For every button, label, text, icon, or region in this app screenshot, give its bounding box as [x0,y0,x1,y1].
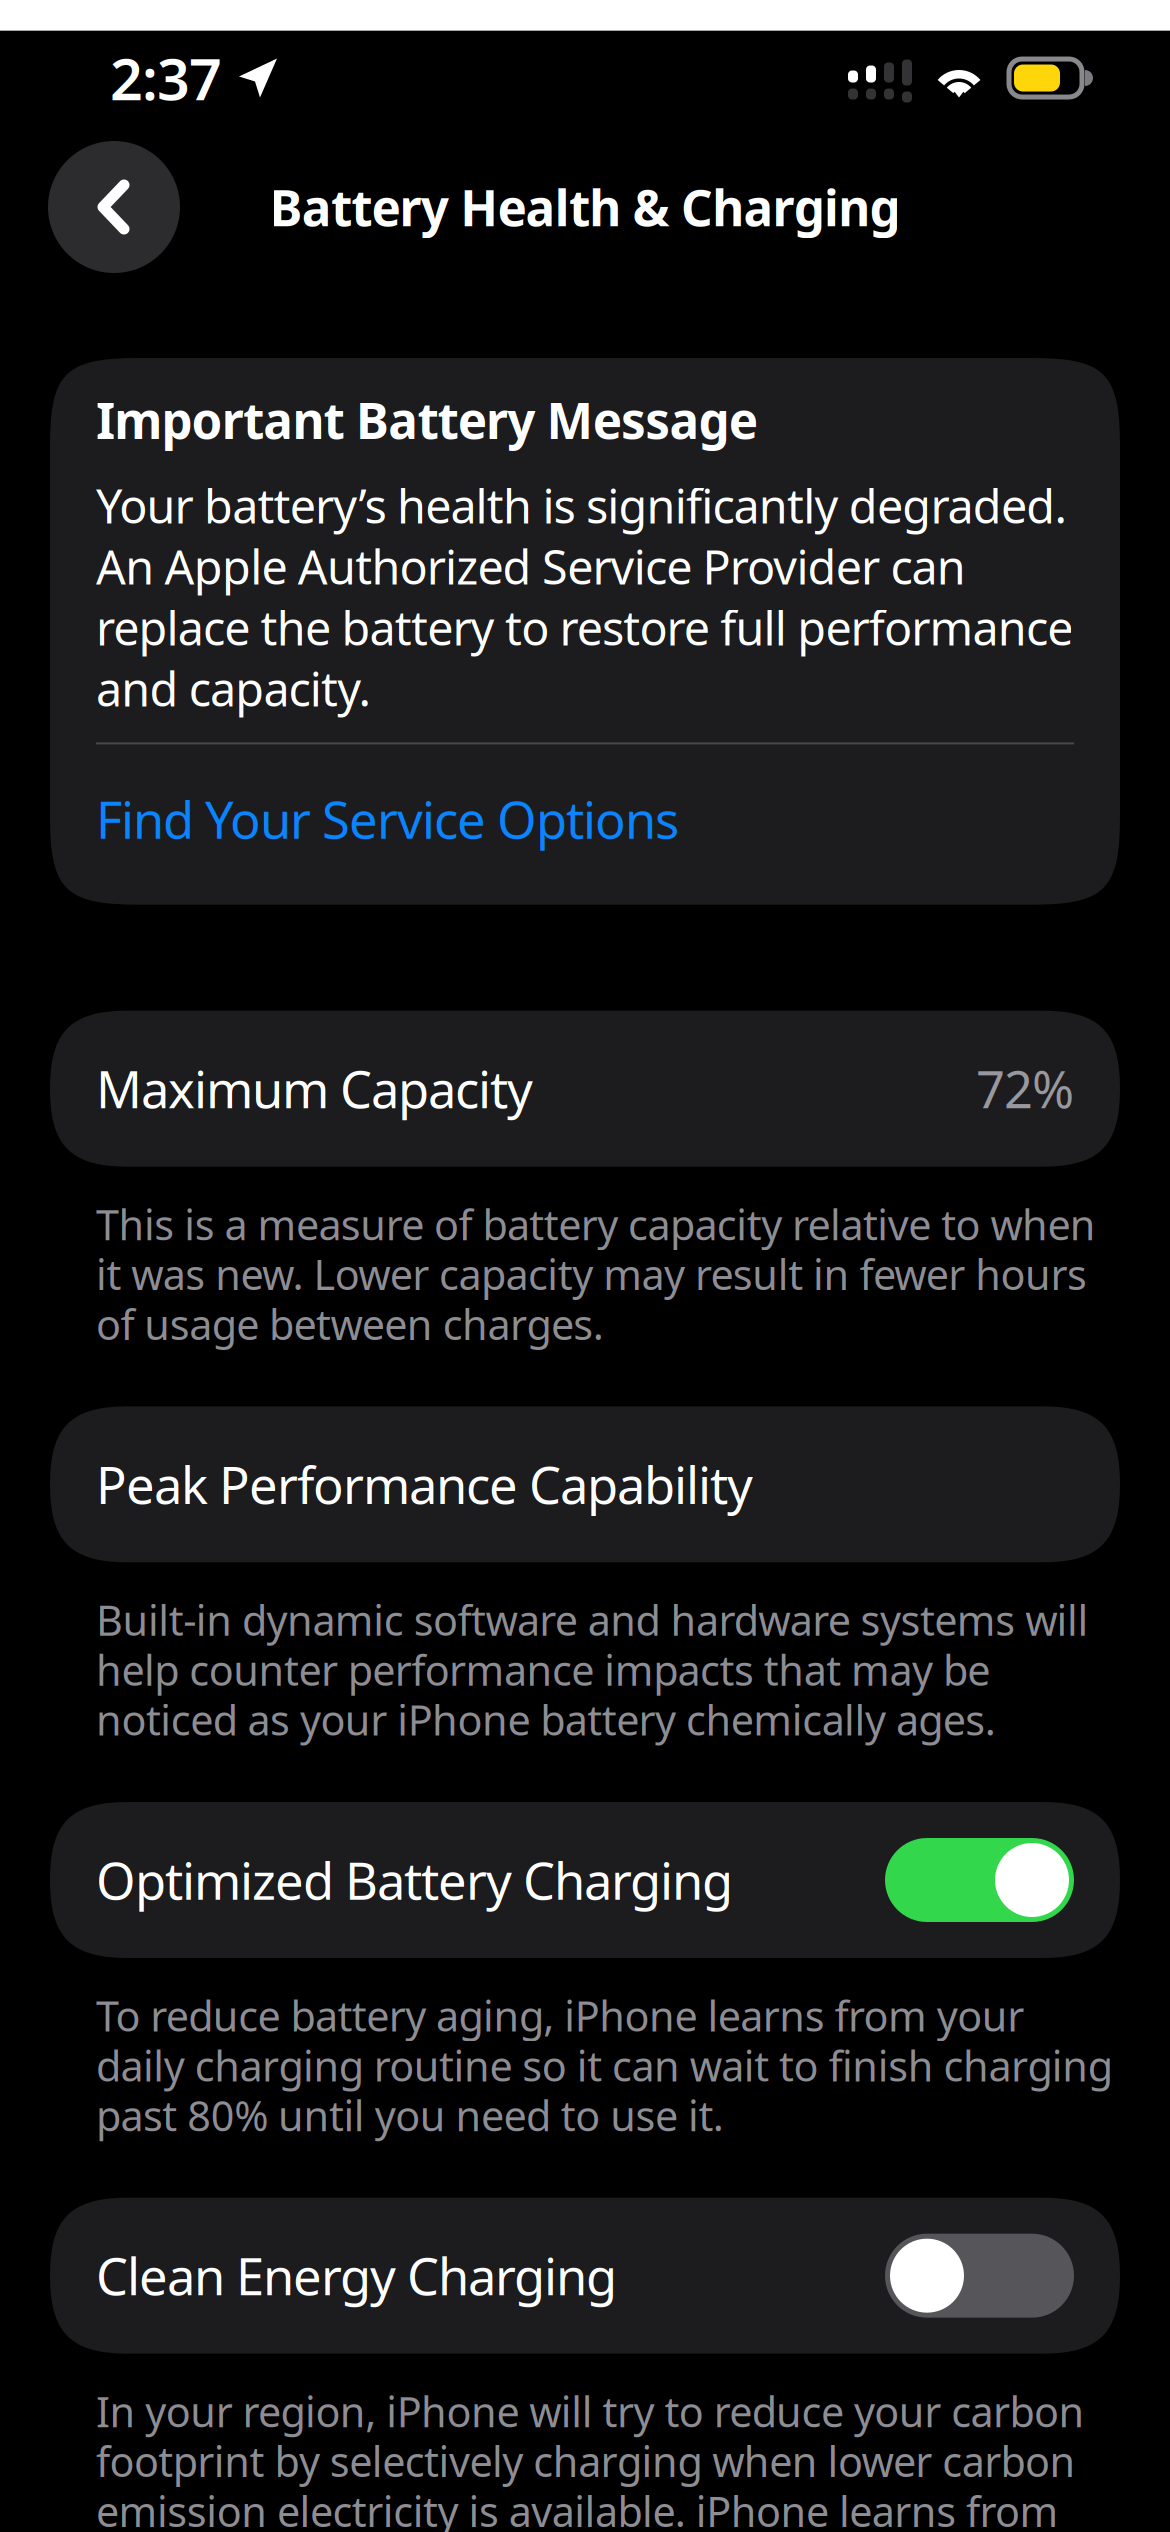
staticText: This is a measure of battery capacity re… [96,1197,1096,1351]
staticText: Built-in dynamic software and hardware s… [96,1592,1088,1747]
staticText: Important Battery Message [96,387,758,452]
staticText: Battery Health & Charging [270,174,900,240]
staticText: Your battery’s health is significantly d… [96,474,1073,719]
button[interactable]: Maximum Capacity [50,1011,1120,1167]
staticText: Find Your Service Options [96,785,679,853]
staticText: In your region, iPhone will try to reduc… [96,2384,1084,2532]
staticText: 72% [976,1055,1074,1122]
button[interactable]: Back [48,141,180,273]
button[interactable]: Find Your Service Options [96,785,1074,853]
staticText: Clean Energy Charging [96,2242,617,2309]
staticText: To reduce battery aging, iPhone learns f… [96,1988,1113,2143]
button[interactable]: Peak Performance Capability [50,1406,1120,1562]
staticText: Optimized Battery Charging [96,1846,733,1914]
staticText: 2:37 [110,40,222,116]
button[interactable]: Optimized Battery Charging [50,1802,1120,1958]
staticText: Maximum Capacity [96,1055,533,1122]
button[interactable]: Clean Energy Charging [50,2198,1120,2354]
staticText: Peak Performance Capability [96,1451,753,1518]
